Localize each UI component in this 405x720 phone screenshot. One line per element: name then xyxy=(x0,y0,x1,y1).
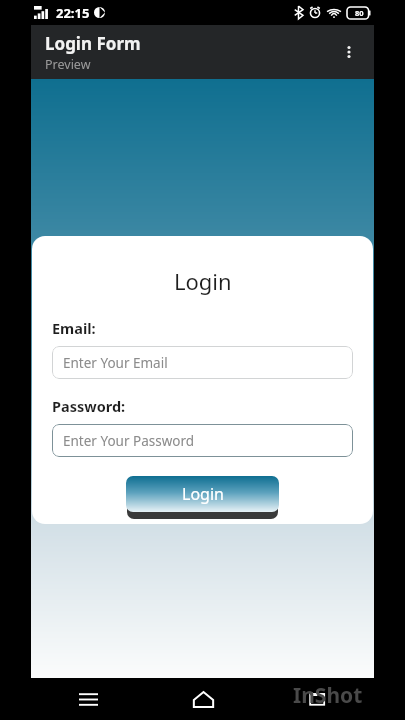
staticText: Login xyxy=(182,483,224,505)
button[interactable]: More options xyxy=(332,35,366,69)
staticText: Email: xyxy=(52,318,96,338)
staticText: Enter Your Email xyxy=(63,354,168,372)
staticText: 22:15 xyxy=(56,4,90,22)
button[interactable]: Enter Your Email xyxy=(52,346,353,379)
staticText: InShot xyxy=(293,681,363,710)
staticText: Login xyxy=(174,266,232,296)
staticText: Preview xyxy=(45,56,91,73)
button[interactable]: Enter Your Password xyxy=(52,424,353,457)
button[interactable]: Home xyxy=(185,681,221,717)
staticText: 80 xyxy=(355,8,364,18)
button[interactable]: Menu xyxy=(70,681,106,717)
staticText: Password: xyxy=(52,396,126,416)
staticText: Enter Your Password xyxy=(63,432,195,450)
staticText: Login Form xyxy=(45,32,141,55)
button[interactable]: Login xyxy=(126,476,279,512)
button[interactable]: Back xyxy=(299,681,335,717)
